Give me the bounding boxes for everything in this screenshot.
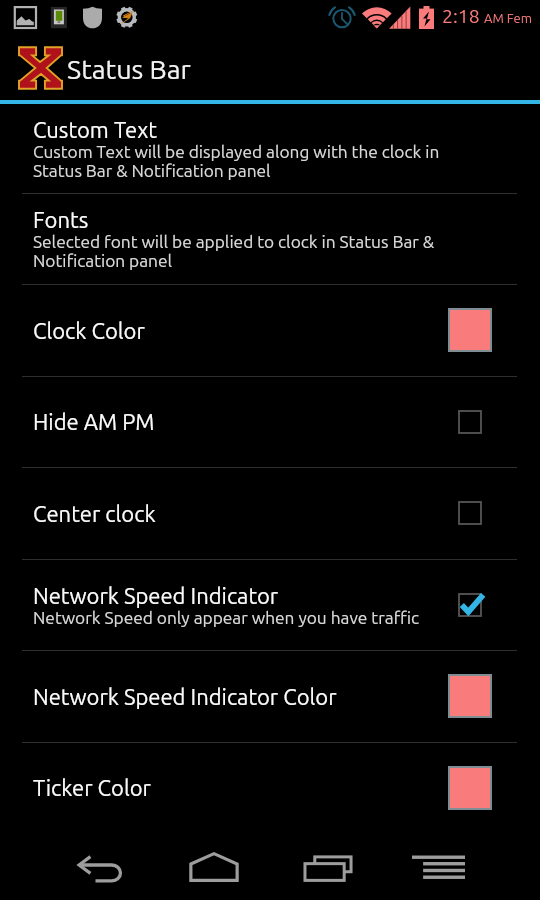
button[interactable]: Choose color — [448, 766, 492, 810]
button[interactable]: Custom Text — [0, 104, 540, 193]
button[interactable]: Network Speed Indicator Color — [0, 650, 540, 742]
button[interactable]: Home — [166, 840, 262, 894]
button[interactable]: Center clock — [0, 467, 540, 559]
button[interactable]: Ticker Color — [0, 742, 540, 833]
button[interactable]: Hide AM PM — [0, 376, 540, 467]
button[interactable]: Back — [56, 843, 146, 894]
staticText: 2:18 — [442, 5, 480, 27]
button[interactable]: Network Speed Indicator — [0, 559, 540, 650]
staticText: Custom Text — [33, 117, 157, 142]
button[interactable]: Toggle — [448, 491, 492, 535]
staticText: Center clock — [33, 501, 156, 526]
staticText: Selected font will be applied to clock i… — [33, 232, 447, 270]
staticText: Clock Color — [33, 318, 145, 343]
staticText: Fonts — [33, 207, 89, 232]
button[interactable]: Clock Color — [0, 284, 540, 376]
button[interactable]: Choose color — [448, 308, 492, 352]
staticText: Ticker Color — [33, 775, 151, 800]
button[interactable]: Choose color — [448, 674, 492, 718]
staticText: Network Speed Indicator Color — [33, 684, 337, 709]
button[interactable]: Menu — [390, 843, 487, 893]
button[interactable]: Recent apps — [282, 843, 375, 894]
button[interactable]: Fonts — [0, 193, 540, 284]
staticText: Network Speed Indicator — [33, 583, 279, 608]
staticText: AM Fem — [484, 11, 532, 26]
button[interactable]: Toggle — [448, 583, 492, 627]
staticText: Custom Text will be displayed along with… — [33, 142, 447, 180]
staticText: Hide AM PM — [33, 409, 155, 434]
button[interactable]: Toggle — [448, 400, 492, 444]
staticText: Network Speed only appear when you have … — [33, 608, 419, 627]
staticText: Status Bar — [67, 54, 191, 84]
